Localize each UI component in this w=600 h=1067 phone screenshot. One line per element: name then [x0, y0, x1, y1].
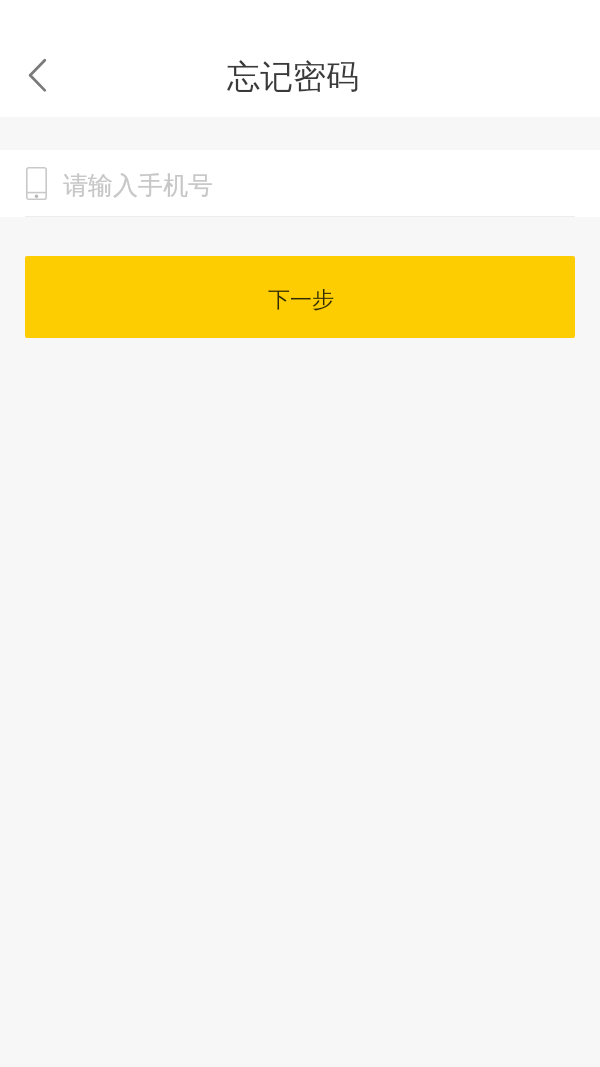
staticText: 请输入手机号 [63, 170, 213, 201]
button[interactable]: 下一步 [25, 256, 575, 338]
staticText: 忘记密码 [227, 56, 359, 98]
staticText: 下一步 [268, 286, 334, 314]
button[interactable]: 请输入手机号 [0, 150, 600, 217]
button[interactable]: Back [13, 51, 61, 99]
